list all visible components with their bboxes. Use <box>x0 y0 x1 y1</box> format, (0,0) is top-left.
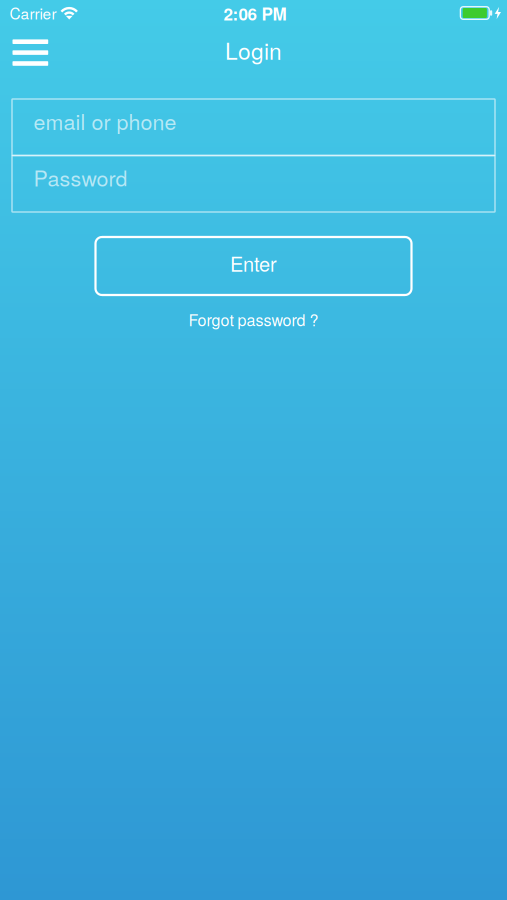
staticText: Forgot password ? <box>188 308 318 331</box>
staticText: Enter <box>230 249 277 277</box>
button[interactable]: email or phone <box>12 99 495 155</box>
button[interactable]: Forgot password ? <box>176 301 330 338</box>
button[interactable]: Menu <box>0 26 62 78</box>
staticText: Login <box>225 34 282 66</box>
button[interactable]: Password <box>12 155 495 212</box>
staticText: Password <box>33 162 127 192</box>
staticText: 2:06 PM <box>223 1 286 26</box>
staticText: Carrier <box>9 2 56 24</box>
staticText: email or phone <box>33 105 176 136</box>
button[interactable]: Enter <box>95 237 411 295</box>
